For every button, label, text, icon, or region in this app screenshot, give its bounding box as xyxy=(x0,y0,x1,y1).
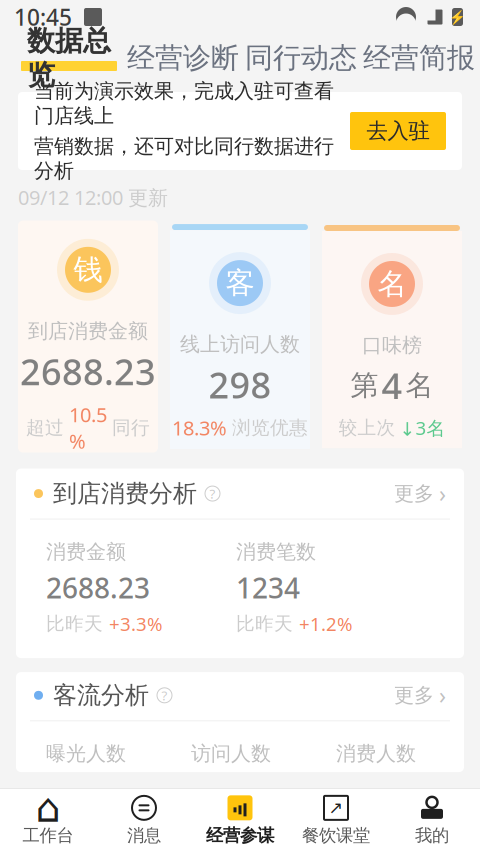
staticText: 访问人数 xyxy=(191,741,271,766)
staticText: 名 xyxy=(377,266,406,302)
staticText: 同行动态 xyxy=(245,41,357,75)
staticText: 营销数据，还可对比同行数据进行分析 xyxy=(34,134,334,183)
staticText: 10.5% xyxy=(69,401,107,454)
staticText: 消费笔数 xyxy=(236,540,316,564)
staticText: 曝光人数 xyxy=(46,741,126,766)
staticText: 2688.23 xyxy=(20,347,156,395)
staticText: 4 xyxy=(381,361,402,409)
button[interactable]: 同行动态 xyxy=(242,36,360,80)
staticText: ↗ xyxy=(328,798,343,818)
staticText: 较上次 xyxy=(338,416,395,439)
button[interactable]: 经营参谋 xyxy=(192,795,288,846)
staticText: 线上访问人数 xyxy=(180,332,300,357)
staticText: ⌂ xyxy=(35,785,60,831)
button[interactable]: 更多 xyxy=(394,680,446,710)
staticText: +3.3% xyxy=(109,611,163,636)
staticText: ↓3名 xyxy=(399,415,445,440)
staticText: 超过 xyxy=(26,416,64,439)
staticText: 消费人数 xyxy=(336,741,416,766)
staticText: 当前为演示效果，完成入驻可查看门店线上 xyxy=(34,79,334,128)
staticText: 比昨天 xyxy=(236,612,293,635)
staticText: 工作台 xyxy=(22,825,73,846)
staticText: 09/12 12:00 更新 xyxy=(18,184,168,211)
staticText: 18.3% xyxy=(172,414,227,441)
staticText: 名 xyxy=(405,368,433,403)
staticText: 到店消费金额 xyxy=(28,319,148,343)
staticText: 我的 xyxy=(415,825,449,846)
button[interactable]: ⌂ xyxy=(0,795,96,846)
staticText: 去入驻 xyxy=(366,118,429,144)
staticText: 浏览优惠 xyxy=(232,416,308,439)
staticText: 1234 xyxy=(236,569,300,606)
staticText: 更多 xyxy=(394,481,434,506)
staticText: › xyxy=(439,478,446,509)
button[interactable]: ↗ xyxy=(288,795,384,846)
staticText: ? xyxy=(209,485,215,502)
button[interactable]: 消息 xyxy=(96,795,192,846)
staticText: 2688.23 xyxy=(46,569,150,606)
staticText: › xyxy=(439,680,446,710)
staticText: 经营参谋 xyxy=(206,825,274,846)
staticText: 经营简报 xyxy=(363,41,475,75)
button[interactable]: 我的 xyxy=(384,795,480,846)
staticText: 10:45 xyxy=(14,2,72,32)
staticText: ⚡ xyxy=(449,9,466,25)
staticText: 第 xyxy=(350,368,378,403)
staticText: 消息 xyxy=(127,825,161,846)
staticText: 经营诊断 xyxy=(127,41,239,75)
button[interactable]: 去入驻 xyxy=(350,112,446,150)
staticText: 口味榜 xyxy=(362,333,422,358)
staticText: 298 xyxy=(208,361,271,408)
staticText: 餐饮课堂 xyxy=(302,825,370,846)
staticText: 客流分析 xyxy=(53,681,149,710)
staticText: 客 xyxy=(225,265,254,301)
staticText: 数据总览 xyxy=(27,24,111,92)
button[interactable]: 数据总览 xyxy=(14,36,124,80)
staticText: ? xyxy=(161,686,167,704)
staticText: +1.2% xyxy=(299,611,353,636)
staticText: 同行 xyxy=(112,416,150,439)
staticText: 钱 xyxy=(73,252,102,288)
button[interactable]: 经营诊断 xyxy=(124,36,242,80)
staticText: 消费金额 xyxy=(46,540,126,564)
staticText: 到店消费分析 xyxy=(53,479,197,508)
button[interactable]: 更多 xyxy=(394,478,446,509)
button[interactable]: 经营简报 xyxy=(360,36,478,80)
staticText: 比昨天 xyxy=(46,612,103,635)
staticText: 更多 xyxy=(394,683,434,708)
